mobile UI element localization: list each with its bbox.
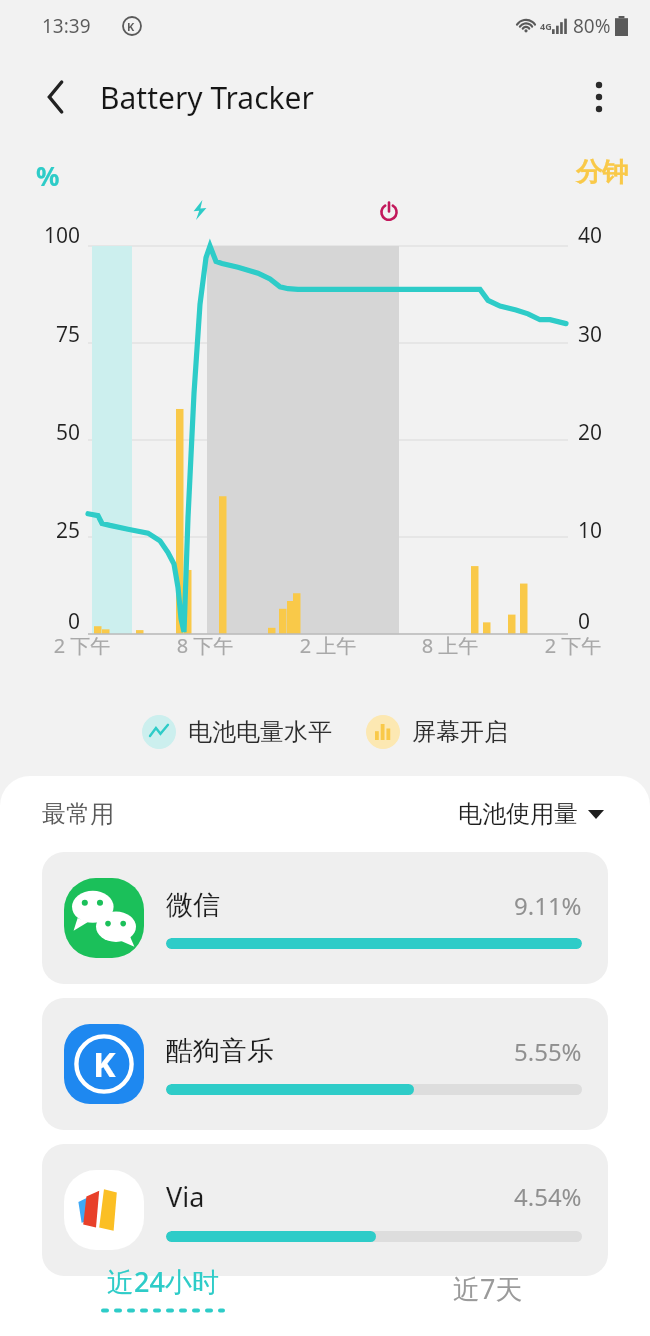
staticText: 9.11% [514,889,582,922]
staticText: 0 [24,607,80,636]
staticText: 50 [24,418,80,447]
staticText: 近7天 [453,1270,523,1307]
staticText: 4G [540,20,552,32]
staticText: 8 上午 [402,632,498,659]
staticText: 分钟 [576,156,628,189]
button[interactable]: 近7天 [325,1240,650,1336]
staticText: 酷狗音乐 [166,1034,274,1068]
staticText: 4.54% [514,1180,582,1213]
button[interactable]: 微信 [42,852,608,984]
staticText: 近24小时 [107,1263,219,1300]
button[interactable]: 近24小时 [0,1240,325,1336]
staticText: 电池电量水平 [188,717,332,747]
button[interactable]: Back [30,71,82,123]
staticText: 电池使用量 [458,799,578,829]
button[interactable]: K [42,998,608,1130]
staticText: 75 [24,320,80,349]
staticText: 30 [578,320,628,349]
staticText: K [127,19,135,34]
staticText: 10 [578,516,628,545]
staticText: 0 [578,607,628,636]
button[interactable]: More options [572,70,626,124]
staticText: 2 下午 [525,632,621,659]
staticText: 20 [578,418,628,447]
staticText: 5.55% [514,1035,582,1068]
staticText: % [36,158,60,193]
staticText: 8 下午 [157,632,253,659]
staticText: 25 [24,516,80,545]
staticText: 屏幕开启 [412,717,508,747]
button[interactable]: 屏幕开启 [362,715,512,749]
staticText: Battery Tracker [100,77,314,118]
staticText: 2 下午 [34,632,130,659]
button[interactable]: Via [42,1144,608,1276]
staticText: K [93,1041,116,1087]
staticText: 最常用 [42,799,114,829]
button[interactable]: 电池电量水平 [138,715,336,749]
staticText: Via [166,1178,205,1215]
staticText: 100 [24,221,80,250]
staticText: 80% [573,13,611,39]
staticText: 2 上午 [280,632,376,659]
button[interactable]: 电池使用量 [454,795,608,833]
staticText: 13:39 [42,13,91,39]
staticText: 40 [578,221,628,250]
staticText: 微信 [166,888,220,922]
